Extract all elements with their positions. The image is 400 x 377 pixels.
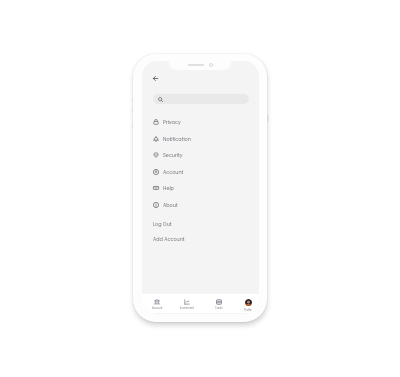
button[interactable]: Account	[142, 164, 259, 180]
staticText: Investment	[180, 306, 195, 310]
staticText: Account	[152, 306, 163, 310]
staticText: Add Account	[153, 236, 185, 243]
button[interactable]: Notification	[142, 131, 259, 147]
button[interactable]	[153, 94, 249, 104]
button[interactable]: Help	[142, 180, 259, 196]
button[interactable]: Log Out	[142, 217, 259, 231]
staticText: Security	[163, 152, 183, 159]
button[interactable]: About	[142, 197, 259, 213]
button[interactable]: Profile	[234, 294, 259, 312]
staticText: Privacy	[163, 119, 181, 126]
staticText: Notification	[163, 136, 191, 143]
staticText: Account	[163, 169, 184, 176]
button[interactable]: Add Account	[142, 232, 259, 246]
button[interactable]: Security	[142, 147, 259, 163]
staticText: Profile	[244, 308, 252, 312]
staticText: Log Out	[153, 221, 172, 228]
staticText: About	[163, 202, 178, 209]
button[interactable]: Back	[149, 72, 162, 85]
button[interactable]: Investment	[173, 294, 201, 310]
button[interactable]: Cards	[205, 294, 233, 310]
staticText: Cards	[215, 306, 223, 310]
button[interactable]: Account	[143, 294, 171, 310]
button[interactable]: Privacy	[142, 114, 259, 130]
staticText: Help	[163, 185, 174, 192]
